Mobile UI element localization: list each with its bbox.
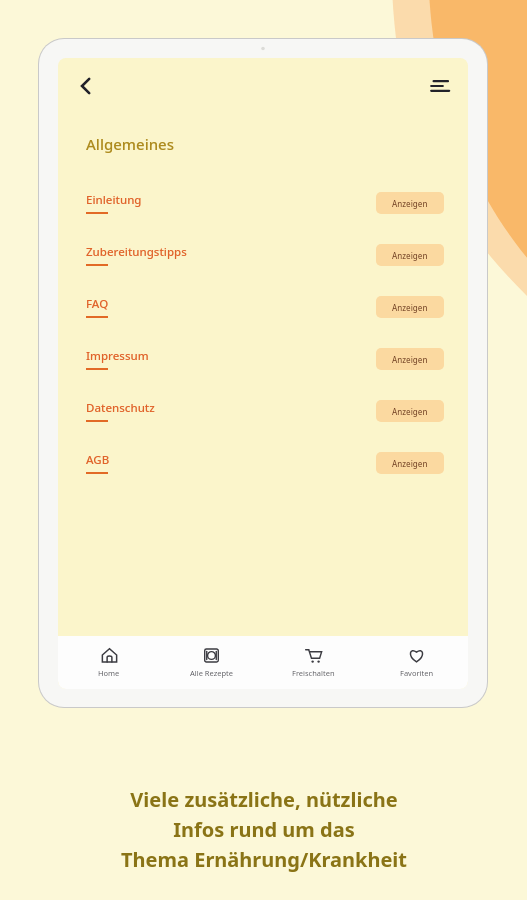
button[interactable]: Anzeigen — [376, 296, 444, 318]
button[interactable]: Anzeigen — [376, 400, 444, 422]
staticText: Zubereitungstipps — [86, 244, 187, 260]
button[interactable]: Zubereitungstipps — [86, 244, 187, 266]
button[interactable]: Alle Rezepte — [160, 636, 262, 689]
staticText: Home — [98, 668, 120, 678]
staticText: Einleitung — [86, 192, 142, 208]
button[interactable]: Anzeigen — [376, 348, 444, 370]
staticText: Anzeigen — [392, 458, 428, 469]
button[interactable]: Datenschutz — [86, 400, 155, 422]
staticText: Freischalten — [292, 668, 335, 678]
staticText: Favoriten — [400, 668, 434, 678]
button[interactable]: FAQ — [86, 296, 109, 318]
button[interactable]: Einleitung — [86, 192, 142, 214]
button[interactable]: Anzeigen — [376, 244, 444, 266]
button[interactable]: Anzeigen — [376, 192, 444, 214]
staticText: FAQ — [86, 296, 109, 312]
button[interactable]: Impressum — [86, 348, 149, 370]
staticText: Anzeigen — [392, 198, 428, 209]
button[interactable]: Favoriten — [365, 636, 468, 689]
staticText: Impressum — [86, 348, 149, 364]
staticText: AGB — [86, 452, 110, 468]
staticText: Viele zusätzliche, nützliche — [130, 786, 398, 813]
staticText: Anzeigen — [392, 250, 428, 261]
button[interactable]: Back — [64, 64, 108, 108]
button[interactable]: Anzeigen — [376, 452, 444, 474]
staticText: Infos rund um das — [173, 816, 355, 843]
staticText: Alle Rezepte — [190, 668, 233, 678]
button[interactable]: Menu — [418, 64, 462, 108]
staticText: Thema Ernährung/Krankheit — [121, 846, 407, 873]
button[interactable]: Home — [58, 636, 160, 689]
staticText: Anzeigen — [392, 302, 428, 313]
staticText: Anzeigen — [392, 354, 428, 365]
button[interactable]: AGB — [86, 452, 110, 474]
button[interactable]: Freischalten — [262, 636, 365, 689]
staticText: Anzeigen — [392, 406, 428, 417]
staticText: Datenschutz — [86, 400, 155, 416]
staticText: Allgemeines — [86, 134, 175, 154]
